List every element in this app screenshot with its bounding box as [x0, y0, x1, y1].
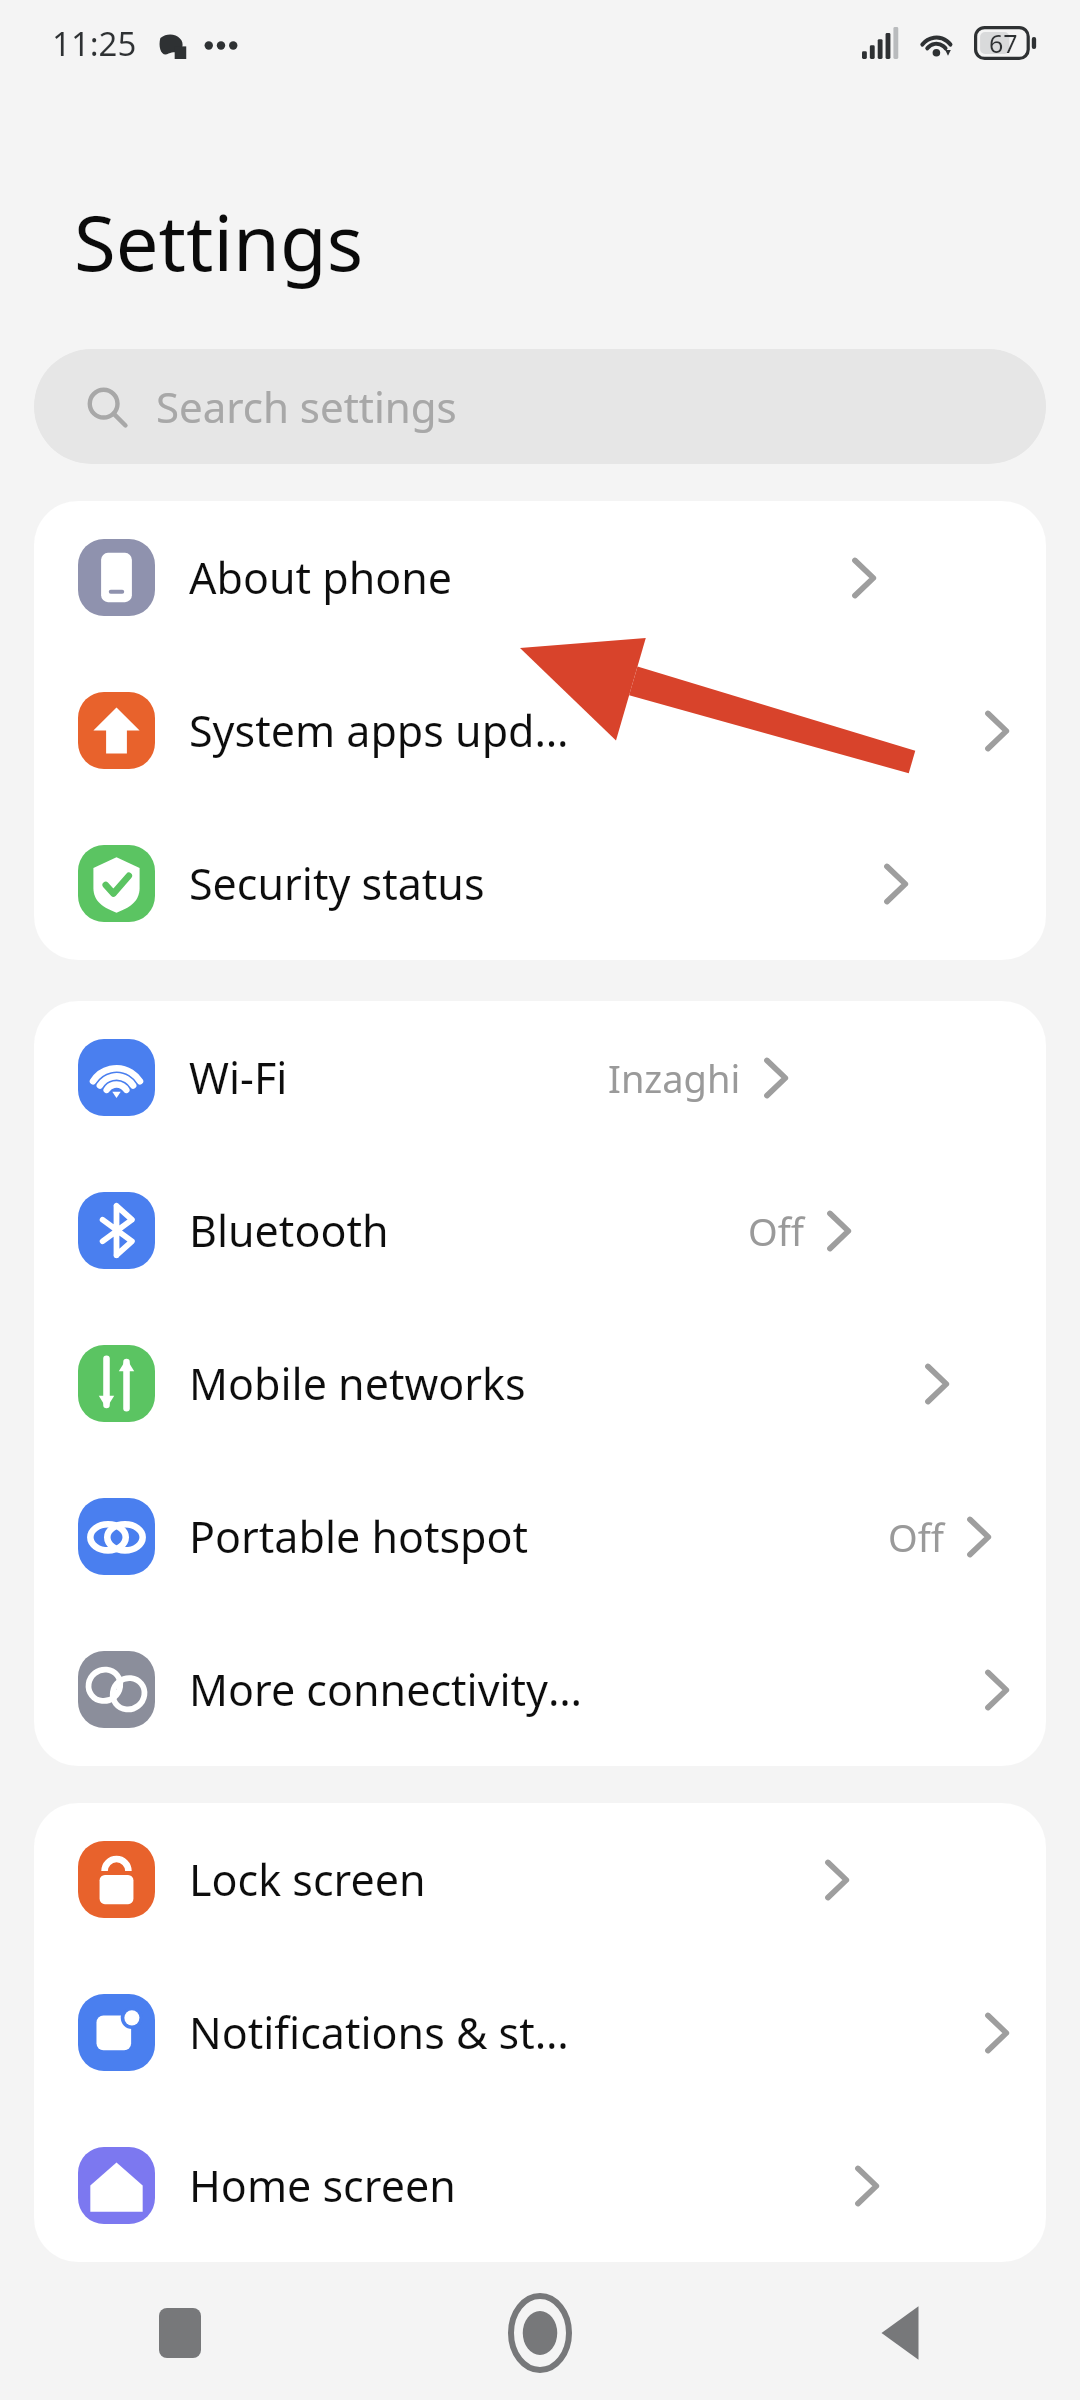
button[interactable]: Security status: [34, 807, 1046, 960]
button[interactable]: Home: [360, 2265, 720, 2400]
staticText: Home screen: [189, 2156, 456, 2215]
button[interactable]: About phone: [34, 501, 1046, 654]
staticText: Bluetooth: [189, 1201, 389, 1260]
button[interactable]: Wi-Fi: [34, 1001, 1046, 1154]
staticText: Search settings: [156, 378, 457, 435]
staticText: 11:25: [52, 21, 137, 66]
button[interactable]: Recent apps: [0, 2265, 360, 2400]
staticText: Mobile networks: [189, 1354, 526, 1413]
staticText: Notifications & status bar: [189, 2003, 586, 2062]
button[interactable]: Notifications & status bar: [34, 1956, 1046, 2109]
staticText: 67: [989, 26, 1018, 60]
staticText: Wi-Fi: [189, 1048, 288, 1107]
button[interactable]: More connectivity options: [34, 1613, 1046, 1766]
button[interactable]: Back: [720, 2265, 1080, 2400]
staticText: More connectivity options: [189, 1660, 586, 1719]
button[interactable]: Home screen: [34, 2109, 1046, 2262]
button[interactable]: Mobile networks: [34, 1307, 1046, 1460]
staticText: About phone: [189, 548, 453, 607]
button[interactable]: Bluetooth: [34, 1154, 1046, 1307]
staticText: Lock screen: [189, 1850, 426, 1909]
button[interactable]: Portable hotspot: [34, 1460, 1046, 1613]
button[interactable]: Search settings: [34, 349, 1046, 464]
staticText: Security status: [189, 854, 485, 913]
staticText: Off: [748, 1205, 804, 1257]
staticText: Off: [888, 1511, 944, 1563]
staticText: Portable hotspot: [189, 1507, 529, 1566]
button[interactable]: System apps updater: [34, 654, 1046, 807]
staticText: System apps updater: [189, 701, 586, 760]
staticText: Settings: [74, 190, 364, 294]
staticText: Inzaghi: [608, 1052, 741, 1104]
button[interactable]: Lock screen: [34, 1803, 1046, 1956]
